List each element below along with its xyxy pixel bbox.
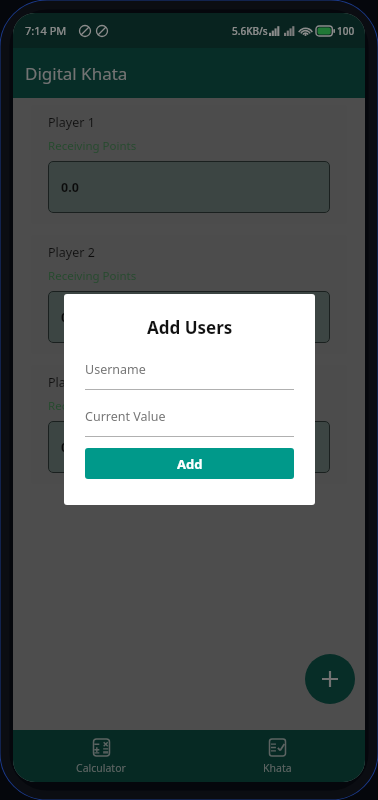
button[interactable]: Username bbox=[85, 361, 294, 390]
button[interactable]: 0.0 bbox=[48, 421, 330, 473]
button[interactable]: 0.0 bbox=[48, 161, 330, 213]
staticText: Player 2 bbox=[48, 244, 95, 261]
staticText: Add bbox=[177, 455, 203, 473]
staticText: Player 3 bbox=[48, 374, 95, 391]
button[interactable]: Add user bbox=[305, 654, 355, 704]
staticText: Player 1 bbox=[48, 114, 95, 131]
staticText: Khata bbox=[263, 761, 292, 775]
button[interactable]: Player 2 bbox=[31, 235, 347, 354]
staticText: Current Value bbox=[85, 408, 166, 425]
staticText: Username bbox=[85, 361, 146, 378]
staticText: Digital Khata bbox=[25, 62, 128, 85]
button[interactable]: Khata bbox=[189, 732, 365, 781]
staticText: 5.6KB/s bbox=[232, 24, 268, 38]
staticText: Receiving Points bbox=[48, 268, 137, 284]
staticText: 0.0 bbox=[61, 439, 79, 456]
staticText: Receiving Points bbox=[48, 398, 137, 414]
button[interactable]: Current Value bbox=[85, 408, 294, 437]
button[interactable]: Player 3 bbox=[31, 365, 347, 484]
staticText: Calculator bbox=[76, 761, 126, 775]
staticText: 100 bbox=[337, 24, 355, 38]
button[interactable]: 0.0 bbox=[48, 291, 330, 343]
staticText: 0.0 bbox=[61, 309, 79, 326]
button[interactable]: Player 1 bbox=[31, 105, 347, 224]
button[interactable]: Add bbox=[85, 448, 294, 479]
staticText: 7:14 PM bbox=[25, 23, 67, 38]
button[interactable]: Calculator bbox=[13, 732, 189, 781]
staticText: 0.0 bbox=[61, 179, 79, 196]
staticText: Receiving Points bbox=[48, 138, 137, 154]
staticText: Add Users bbox=[147, 316, 233, 339]
